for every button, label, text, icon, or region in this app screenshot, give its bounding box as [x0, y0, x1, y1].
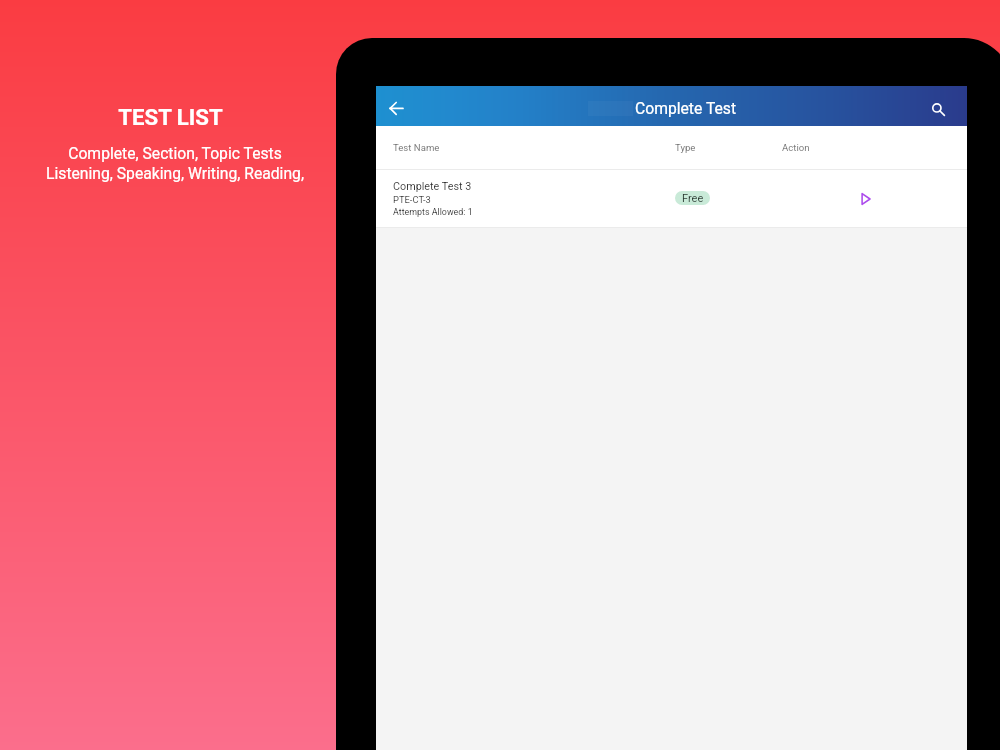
staticText: Attempts Allowed: 1: [393, 207, 473, 217]
staticText: Listening, Speaking, Writing, Reading,: [46, 164, 304, 182]
button[interactable]: Free: [675, 191, 710, 205]
staticText: Test Name: [393, 142, 440, 153]
staticText: Type: [675, 142, 696, 153]
button[interactable]: Back: [382, 94, 410, 122]
staticText: Free: [682, 192, 704, 205]
button[interactable]: Search: [925, 96, 953, 124]
staticText: Complete Test 3: [393, 180, 472, 193]
staticText: Action: [782, 142, 810, 153]
staticText: TEST LIST: [118, 104, 223, 130]
staticText: PTE-CT-3: [393, 194, 431, 205]
staticText: Complete Test: [635, 99, 737, 117]
staticText: Complete, Section, Topic Tests: [68, 144, 282, 162]
button[interactable]: Complete Test 3: [376, 170, 967, 227]
button[interactable]: Start test: [854, 187, 878, 211]
